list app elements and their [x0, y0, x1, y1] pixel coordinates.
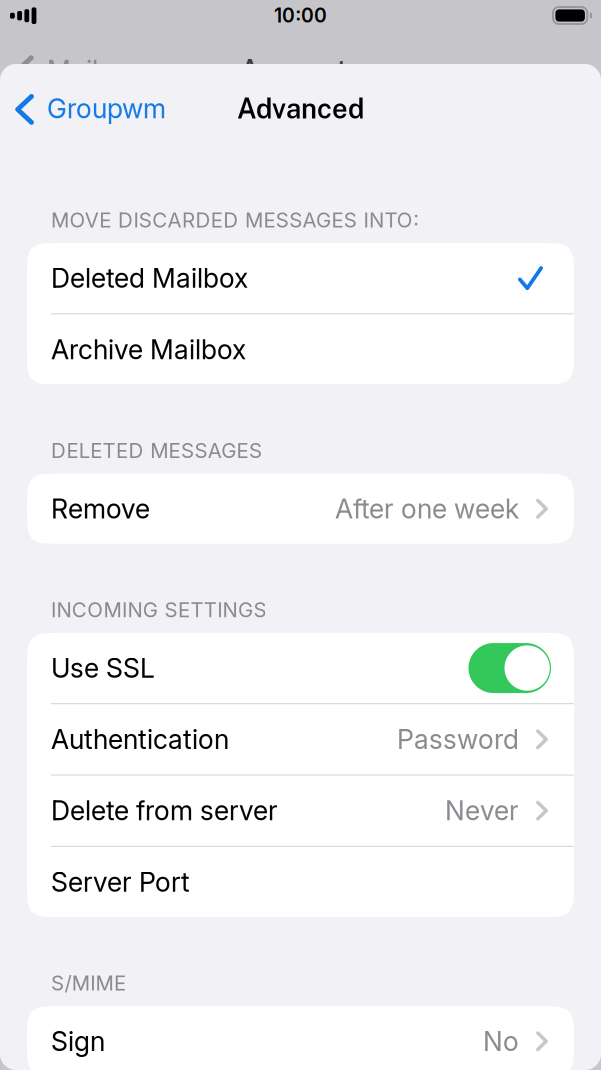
button[interactable]: Remove — [27, 474, 574, 544]
staticText: Mail — [47, 54, 98, 86]
staticText: Authentication — [51, 723, 229, 755]
staticText: Accounts — [240, 54, 361, 86]
button[interactable]: Authentication — [27, 704, 574, 774]
staticText: Server Port — [51, 866, 190, 898]
staticText: Password — [397, 723, 519, 755]
button[interactable]: Groupwm — [0, 79, 176, 133]
staticText: After one week — [335, 493, 519, 525]
staticText: MOVE DISCARDED MESSAGES INTO: — [51, 208, 419, 232]
button[interactable]: Archive Mailbox — [27, 314, 574, 385]
staticText: Groupwm — [47, 92, 166, 125]
button[interactable]: Deleted Mailbox — [27, 243, 574, 313]
staticText: Never — [445, 794, 519, 827]
button[interactable]: Delete from server — [27, 775, 574, 846]
staticText: Archive Mailbox — [51, 333, 246, 366]
staticText: Remove — [51, 493, 150, 525]
staticText: Use SSL — [51, 652, 155, 684]
staticText: Deleted Mailbox — [51, 262, 248, 294]
staticText: No — [483, 1025, 519, 1057]
staticText: S/MIME — [51, 971, 126, 995]
staticText: DELETED MESSAGES — [51, 438, 262, 463]
button[interactable]: Sign — [27, 1006, 574, 1070]
staticText: INCOMING SETTINGS — [51, 598, 266, 622]
button[interactable]: Use SSL — [468, 643, 551, 693]
staticText: Delete from server — [51, 794, 278, 827]
staticText: 10:00 — [274, 4, 327, 27]
button[interactable]: Server Port — [27, 847, 574, 917]
staticText: Advanced — [237, 92, 364, 124]
staticText: Sign — [51, 1025, 105, 1057]
